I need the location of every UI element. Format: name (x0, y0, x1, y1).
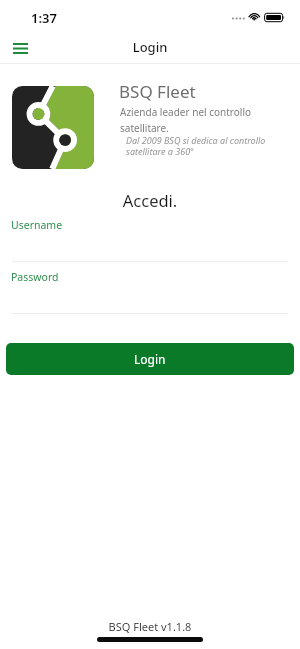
staticText: BSQ Fleet v1.1.8 (0, 619, 300, 634)
staticText: Login (0, 38, 300, 56)
staticText: Accedi. (0, 189, 300, 211)
button[interactable]: Open navigation menu (6, 36, 34, 60)
staticText: Username (11, 218, 63, 232)
button[interactable]: Login (6, 343, 294, 375)
staticText: Azienda leader nel controllo satellitare… (120, 105, 254, 135)
staticText: Login (134, 351, 166, 367)
staticText: BSQ Fleet (119, 80, 196, 103)
staticText: 1:37 (31, 9, 57, 27)
staticText: Dal 2009 BSQ si dedica al controllo sate… (126, 134, 274, 158)
staticText: Password (11, 270, 59, 284)
